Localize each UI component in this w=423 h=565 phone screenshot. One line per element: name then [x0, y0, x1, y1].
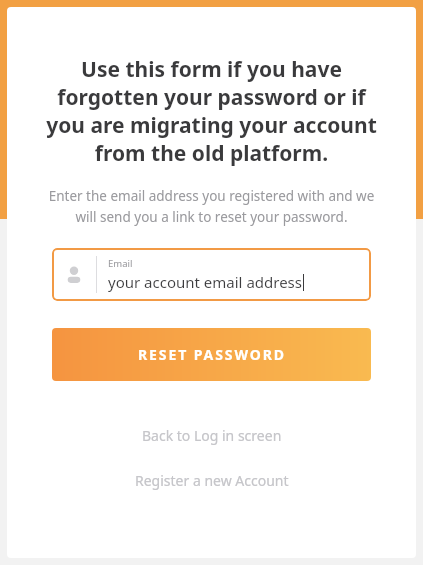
staticText: your account email address [108, 272, 302, 292]
staticText: Back to Log in screen [142, 426, 282, 445]
button[interactable]: Register a new Account [117, 464, 307, 497]
staticText: RESET PASSWORD [138, 345, 286, 364]
button[interactable]: RESET PASSWORD [52, 328, 371, 381]
staticText: Register a new Account [135, 471, 289, 490]
staticText: Email [108, 257, 133, 270]
staticText: Enter the email address you registered w… [45, 187, 378, 226]
button[interactable]: Back to Log in screen [124, 419, 300, 452]
button[interactable]: Email [52, 248, 371, 301]
staticText: Use this form if you have forgotten your… [37, 55, 386, 167]
